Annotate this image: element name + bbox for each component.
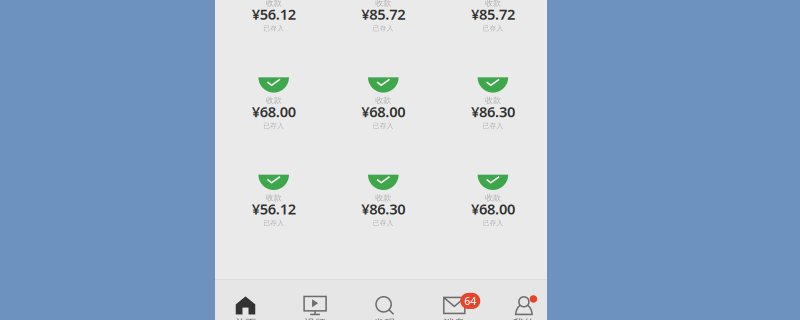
staticText: ¥85.72 xyxy=(471,4,515,24)
staticText: 收款 xyxy=(266,0,282,8)
staticText: 我的 xyxy=(513,317,535,320)
button[interactable]: 收款 xyxy=(219,175,328,226)
staticText: 视频 xyxy=(304,317,326,320)
staticText: 已存入 xyxy=(263,122,284,130)
button[interactable]: 首页 xyxy=(211,280,280,320)
staticText: 已存入 xyxy=(482,24,503,32)
staticText: 已存入 xyxy=(373,24,394,32)
button[interactable]: 收款 xyxy=(328,77,438,129)
staticText: 首页 xyxy=(234,317,256,320)
button[interactable]: 视频 xyxy=(280,280,350,320)
button[interactable]: 收款 xyxy=(328,175,438,226)
staticText: 收款 xyxy=(375,193,391,203)
staticText: 收款 xyxy=(485,0,501,8)
button[interactable]: 收款 xyxy=(438,77,548,129)
staticText: ¥86.30 xyxy=(471,102,515,121)
staticText: 收款 xyxy=(266,95,282,105)
button[interactable]: 消息 xyxy=(419,280,489,320)
button[interactable]: 收款 xyxy=(219,0,328,31)
staticText: 收款 xyxy=(266,193,282,203)
staticText: 已存入 xyxy=(482,219,503,227)
staticText: 已存入 xyxy=(373,122,394,130)
staticText: ¥68.00 xyxy=(471,199,515,219)
staticText: ¥68.00 xyxy=(361,102,405,121)
button[interactable]: 收款 xyxy=(219,77,328,129)
staticText: ¥56.12 xyxy=(252,4,296,24)
button[interactable]: 发现 xyxy=(350,280,419,320)
staticText: 发现 xyxy=(374,317,396,320)
staticText: 收款 xyxy=(485,95,501,105)
staticText: ¥68.00 xyxy=(252,102,296,121)
button[interactable]: 我的 xyxy=(489,280,559,320)
staticText: 已存入 xyxy=(263,219,284,227)
staticText: ¥86.30 xyxy=(361,199,405,219)
button[interactable]: 收款 xyxy=(438,0,548,31)
button[interactable]: 收款 xyxy=(438,175,548,226)
staticText: 已存入 xyxy=(263,24,284,32)
button[interactable]: 收款 xyxy=(328,0,438,31)
staticText: 已存入 xyxy=(373,219,394,227)
staticText: 64 xyxy=(464,294,476,308)
staticText: ¥85.72 xyxy=(361,4,405,24)
staticText: 消息 xyxy=(443,317,465,320)
staticText: 收款 xyxy=(485,193,501,203)
staticText: ¥56.12 xyxy=(252,199,296,219)
staticText: 已存入 xyxy=(482,122,503,130)
staticText: 收款 xyxy=(375,0,391,8)
staticText: 收款 xyxy=(375,95,391,105)
